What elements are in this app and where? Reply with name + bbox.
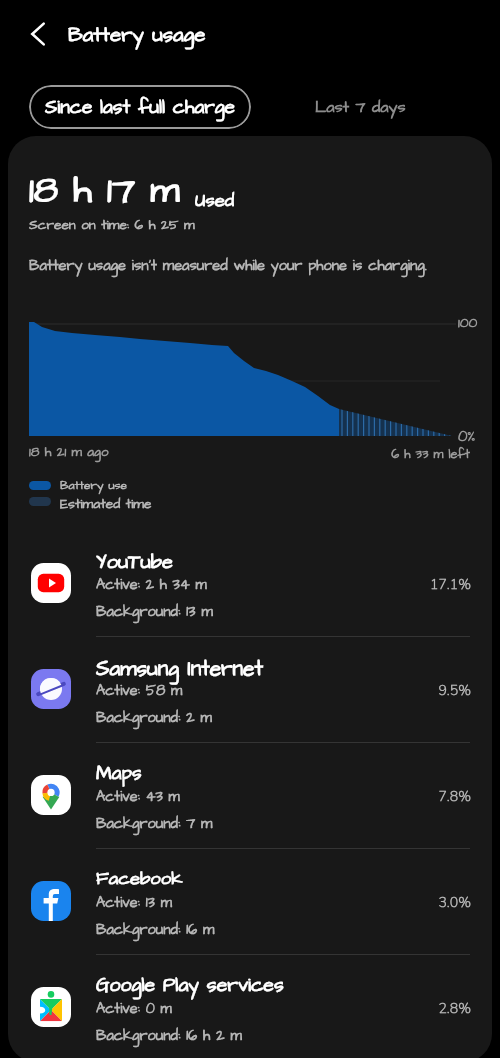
staticText: 6 h 33 m left <box>8 445 470 463</box>
staticText: Battery usage isn't measured while your … <box>29 256 427 276</box>
button[interactable]: Maps <box>8 743 492 849</box>
button[interactable]: Last 7 days <box>270 85 450 129</box>
staticText: Background: 7 m <box>96 814 213 834</box>
staticText: 0% <box>458 426 476 447</box>
staticText: Background: 16 m <box>96 920 215 940</box>
staticText: Background: 16 h 2 m <box>96 1026 242 1046</box>
staticText: Used <box>195 188 235 214</box>
staticText: Since last full charge <box>45 94 236 121</box>
button[interactable]: Since last full charge <box>29 85 251 129</box>
staticText: Active: 0 m <box>96 999 172 1019</box>
staticText: Estimated time <box>60 494 152 513</box>
staticText: Google Play services <box>96 972 284 999</box>
staticText: Active: 13 m <box>96 893 172 913</box>
staticText: 18 h 21 m ago <box>29 443 109 462</box>
staticText: 18 h 17 m <box>29 165 180 217</box>
staticText: 7.8% <box>8 787 471 806</box>
staticText: YouTube <box>96 548 173 576</box>
staticText: Maps <box>96 760 142 786</box>
staticText: Active: 58 m <box>96 681 183 701</box>
staticText: Battery usage <box>68 21 206 50</box>
button[interactable]: Facebook <box>8 849 492 955</box>
button[interactable]: Samsung Internet <box>8 637 492 743</box>
staticText: 9.5% <box>8 681 471 700</box>
staticText: 3.0% <box>8 893 471 912</box>
staticText: Active: 2 h 34 m <box>96 575 207 595</box>
button[interactable]: Google Play services <box>8 955 492 1058</box>
button[interactable]: YouTube <box>8 531 492 637</box>
staticText: Facebook <box>96 866 183 892</box>
button[interactable]: Back <box>16 12 60 56</box>
staticText: Screen on time: 6 h 25 m <box>29 215 195 234</box>
staticText: Samsung Internet <box>96 654 263 683</box>
staticText: Battery use <box>60 477 127 494</box>
staticText: 2.8% <box>8 999 471 1018</box>
staticText: 17.1% <box>8 575 471 594</box>
staticText: Background: 13 m <box>96 602 213 622</box>
staticText: Background: 2 m <box>96 708 212 728</box>
staticText: 100 <box>458 313 478 332</box>
staticText: Last 7 days <box>315 96 406 119</box>
staticText: Active: 43 m <box>96 787 180 807</box>
